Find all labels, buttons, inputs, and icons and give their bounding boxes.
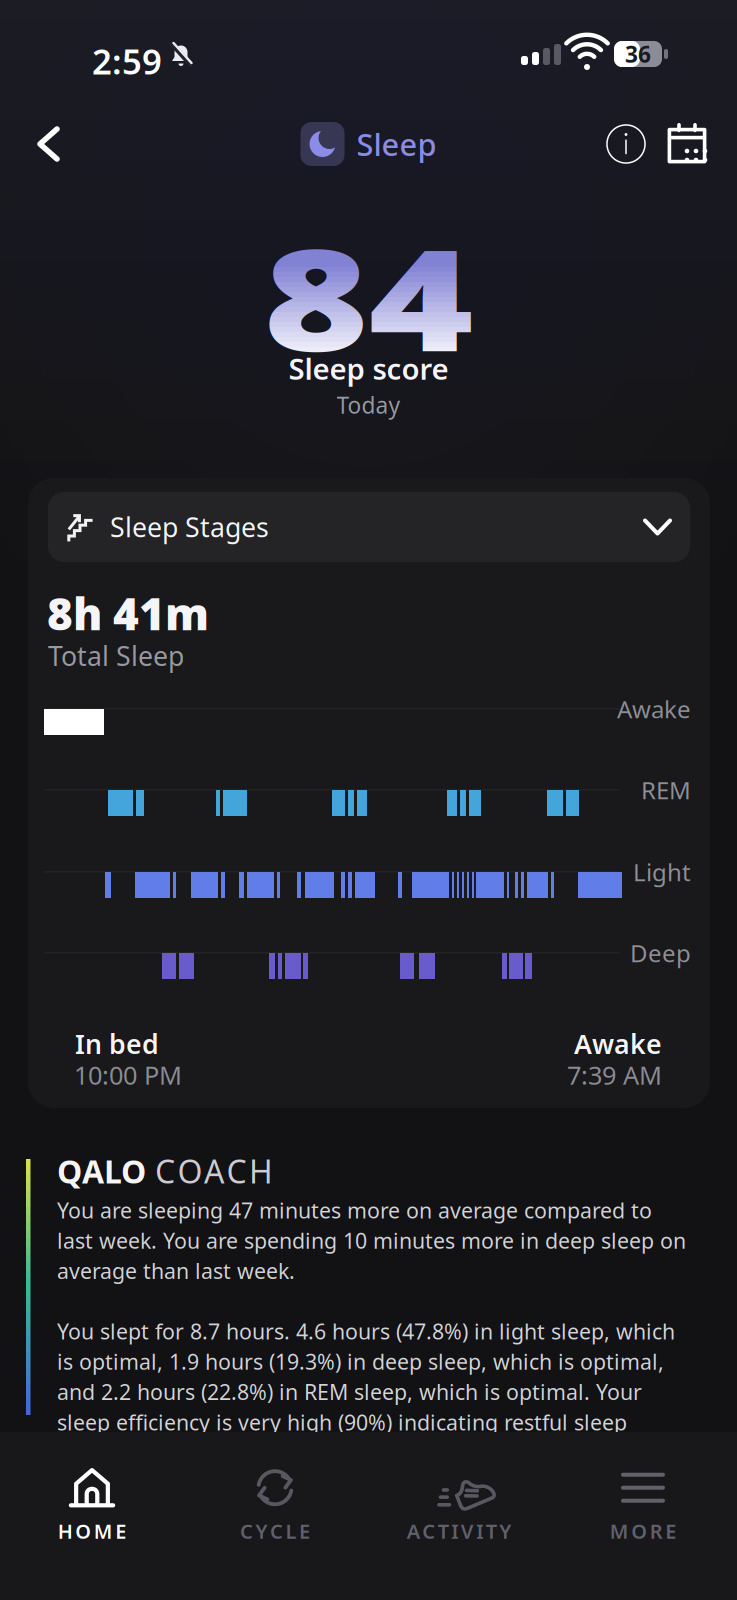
- button[interactable]: Sleep Stages: [48, 492, 690, 562]
- staticText: and 2.2 hours (22.8%) in REM sleep, whic…: [57, 1378, 642, 1406]
- staticText: CYCLE: [240, 1518, 310, 1544]
- staticText: Sleep score: [288, 349, 448, 388]
- staticText: average than last week.: [57, 1257, 295, 1285]
- staticText: 84: [286, 204, 450, 390]
- staticText: 84: [286, 204, 450, 390]
- staticText: Total Sleep: [48, 638, 184, 673]
- button[interactable]: CYCLE: [190, 1452, 360, 1557]
- staticText: 84: [286, 204, 450, 390]
- staticText: 84: [286, 204, 450, 390]
- button[interactable]: MORE: [558, 1452, 728, 1557]
- staticText: 84: [286, 204, 450, 390]
- staticText: 84: [286, 204, 450, 390]
- staticText: 84: [286, 204, 450, 390]
- staticText: You are sleeping 47 minutes more on aver…: [57, 1196, 652, 1224]
- staticText: is optimal, 1.9 hours (19.3%) in deep sl…: [57, 1347, 664, 1376]
- staticText: 84: [286, 204, 450, 390]
- staticText: MORE: [610, 1518, 676, 1544]
- staticText: 36: [625, 39, 651, 69]
- staticText: 84: [286, 204, 450, 390]
- staticText: Awake: [574, 1026, 662, 1061]
- staticText: last week. You are spending 10 minutes m…: [57, 1226, 686, 1255]
- staticText: 2:59: [92, 38, 162, 84]
- button[interactable]: ACTIVITY: [374, 1452, 544, 1557]
- staticText: 84: [286, 204, 450, 390]
- staticText: ACTIVITY: [407, 1518, 511, 1544]
- staticText: Sleep: [356, 124, 436, 164]
- button[interactable]: Calendar: [665, 122, 709, 166]
- staticText: COACH: [155, 1150, 273, 1192]
- staticText: 84: [286, 204, 450, 390]
- staticText: 84: [286, 204, 450, 390]
- staticText: 84: [286, 204, 450, 390]
- staticText: 84: [286, 204, 450, 390]
- staticText: 84: [286, 204, 450, 390]
- staticText: Awake: [617, 693, 691, 725]
- staticText: HOME: [58, 1518, 126, 1544]
- staticText: 84: [286, 204, 450, 390]
- button[interactable]: HOME: [7, 1452, 177, 1557]
- staticText: Deep: [630, 937, 691, 969]
- staticText: Light: [633, 856, 691, 888]
- staticText: 84: [286, 204, 450, 390]
- staticText: 84: [286, 204, 450, 390]
- staticText: You slept for 8.7 hours. 4.6 hours (47.8…: [57, 1317, 675, 1345]
- staticText: 84: [286, 204, 450, 390]
- staticText: 84: [286, 204, 450, 390]
- staticText: QALO: [57, 1150, 146, 1192]
- staticText: 84: [286, 204, 450, 390]
- staticText: 84: [286, 204, 450, 390]
- staticText: 8h 41m: [47, 584, 209, 642]
- staticText: In bed: [75, 1026, 159, 1061]
- staticText: 84: [286, 204, 450, 390]
- staticText: 84: [286, 204, 450, 390]
- staticText: 84: [286, 204, 450, 390]
- staticText: 84: [286, 204, 450, 390]
- staticText: 84: [286, 204, 450, 390]
- staticText: Sleep Stages: [110, 509, 269, 545]
- button[interactable]: Info: [604, 122, 648, 166]
- staticText: REM: [641, 774, 691, 806]
- button[interactable]: Back: [26, 115, 71, 173]
- staticText: 7:39 AM: [567, 1058, 662, 1092]
- staticText: sleep efficiency is very high (90%) indi…: [57, 1408, 627, 1436]
- staticText: 84: [286, 204, 450, 390]
- staticText: 10:00 PM: [74, 1058, 182, 1092]
- staticText: 84: [286, 204, 450, 390]
- staticText: Today: [336, 390, 400, 420]
- staticText: 84: [286, 204, 450, 390]
